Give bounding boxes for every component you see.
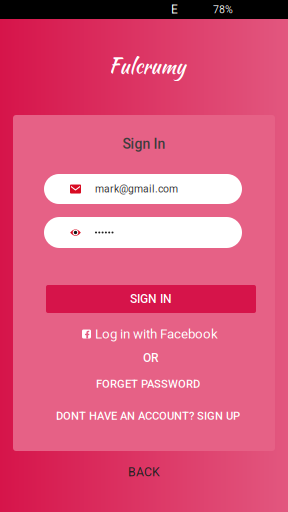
button[interactable]: FORGET PASSWORD [4, 379, 288, 389]
staticText: DONT HAVE AN ACCOUNT? SIGN UP [56, 409, 240, 422]
staticText: mark@gmail.com [95, 183, 178, 195]
staticText: OR [143, 351, 159, 365]
staticText: FORGET PASSWORD [96, 377, 200, 390]
staticText: E [171, 2, 178, 17]
staticText: Fulcrumy [108, 51, 185, 80]
staticText: 78% [213, 3, 233, 16]
staticText: SIGN IN [130, 292, 172, 306]
staticText: Sign In [122, 136, 165, 152]
staticText: BACK [128, 465, 160, 479]
button[interactable]: BACK [0, 466, 288, 478]
button[interactable]: Log in with Facebook [6, 326, 288, 342]
button[interactable]: SIGN IN [46, 285, 256, 313]
button[interactable]: DONT HAVE AN ACCOUNT? SIGN UP [4, 411, 288, 421]
staticText: Log in with Facebook [95, 326, 218, 342]
